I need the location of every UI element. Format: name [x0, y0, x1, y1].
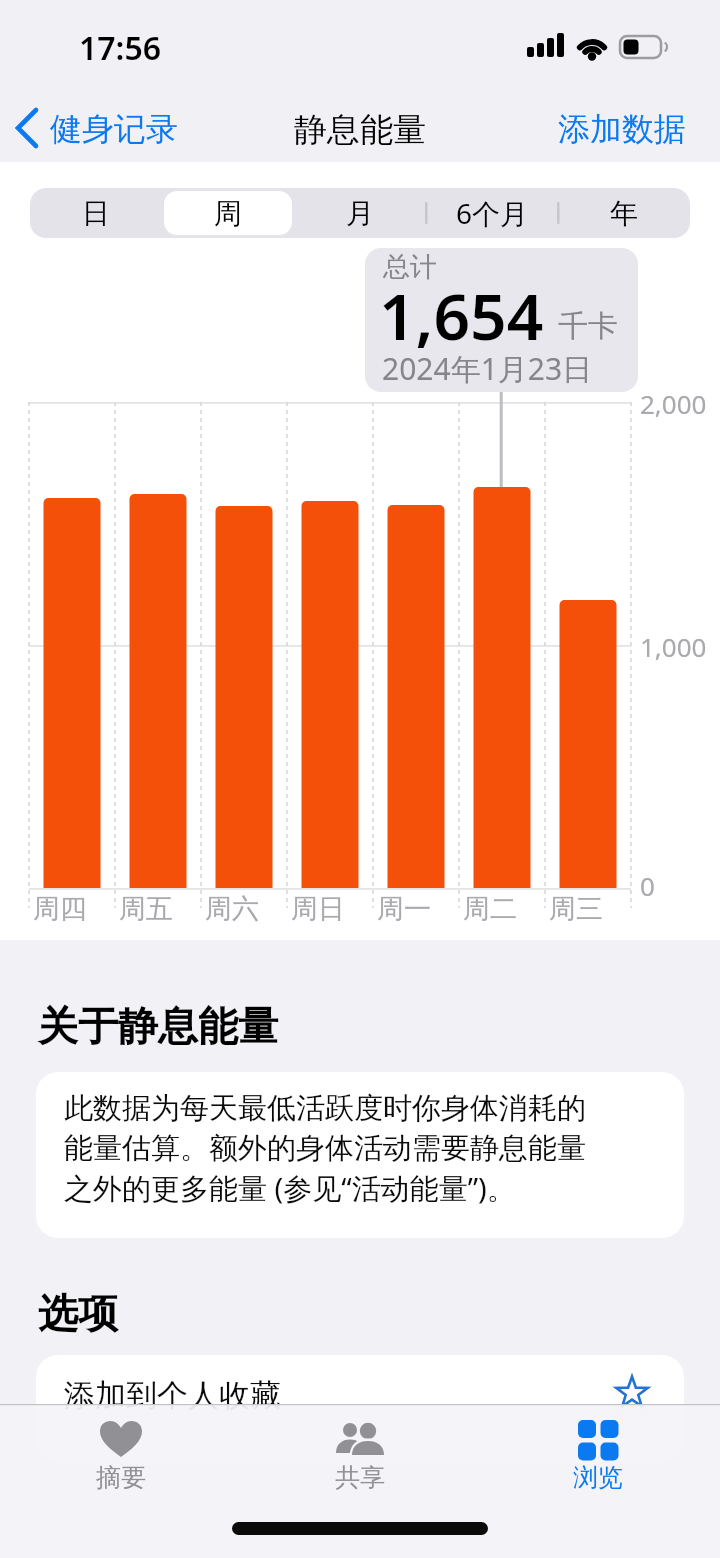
- staticText: 17:56: [79, 26, 162, 70]
- button[interactable]: 摘要: [61, 1410, 181, 1510]
- button[interactable]: 健身记录: [10, 105, 200, 155]
- button[interactable]: 共享: [300, 1410, 420, 1510]
- staticText: 周五: [119, 892, 173, 926]
- staticText: 添加数据: [558, 109, 686, 149]
- staticText: 1,654: [379, 272, 544, 359]
- staticText: 1,000: [640, 629, 707, 664]
- staticText: 添加到个人收藏: [64, 1376, 281, 1415]
- staticText: 周: [214, 196, 242, 231]
- button[interactable]: 6个月: [426, 188, 558, 238]
- staticText: 日: [82, 196, 110, 231]
- button[interactable]: 年: [558, 188, 690, 238]
- staticText: 周四: [33, 892, 87, 926]
- button[interactable]: 月: [294, 188, 426, 238]
- staticText: 共享: [335, 1462, 385, 1493]
- button[interactable]: [36, 1355, 684, 1463]
- button[interactable]: 添加数据: [550, 105, 710, 155]
- staticText: 周二: [463, 892, 517, 926]
- staticText: 2024年1月23日: [382, 348, 593, 389]
- staticText: 总计: [383, 250, 437, 284]
- staticText: 6个月: [456, 194, 529, 232]
- staticText: 周日: [291, 892, 345, 926]
- button[interactable]: 日: [30, 188, 162, 238]
- staticText: 月: [346, 196, 374, 231]
- staticText: 年: [610, 196, 638, 231]
- staticText: 关于静息能量: [38, 1001, 278, 1051]
- staticText: 2,000: [640, 386, 707, 421]
- staticText: 周三: [549, 892, 603, 926]
- staticText: 此数据为每天最低活跃度时你身体消耗的 能量估算。额外的身体活动需要静息能量 之外…: [64, 1090, 586, 1208]
- staticText: 浏览: [573, 1462, 623, 1493]
- staticText: 0: [640, 868, 655, 903]
- staticText: 周六: [205, 892, 259, 926]
- staticText: 健身记录: [50, 109, 178, 149]
- staticText: 静息能量: [294, 109, 426, 151]
- button[interactable]: 浏览: [538, 1410, 658, 1510]
- staticText: 选项: [38, 1288, 118, 1338]
- staticText: 周一: [377, 892, 431, 926]
- button[interactable]: 周: [162, 188, 294, 238]
- staticText: 千卡: [558, 307, 618, 345]
- staticText: 摘要: [96, 1462, 146, 1493]
